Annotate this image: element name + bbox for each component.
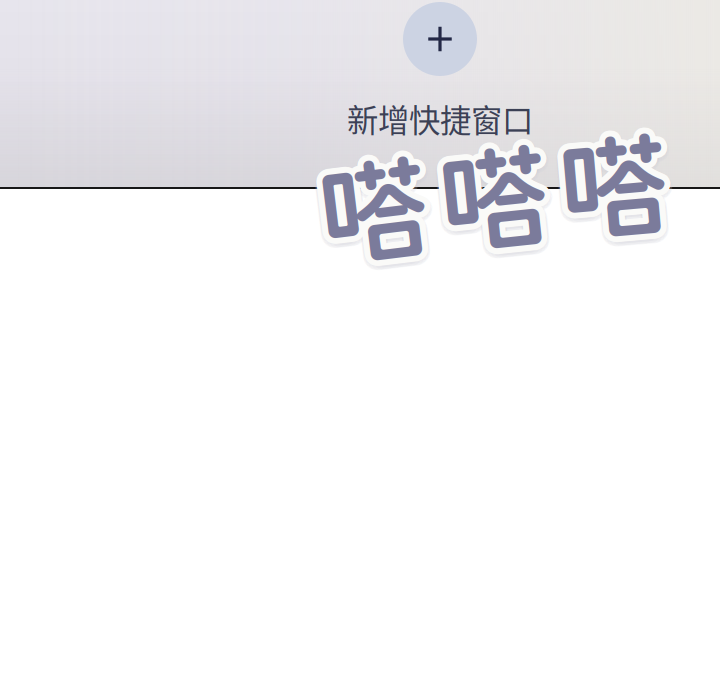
staticText: 嗒 xyxy=(316,142,425,271)
staticText: 嗒 xyxy=(444,130,553,259)
staticText: 嗒 xyxy=(322,156,431,285)
staticText: 嗒 xyxy=(322,141,431,270)
staticText: 嗒 xyxy=(317,152,426,281)
staticText: 嗒 xyxy=(439,129,548,258)
staticText: 嗒 xyxy=(445,142,554,271)
staticText: 嗒 xyxy=(552,128,661,257)
staticText: 嗒 xyxy=(445,132,554,261)
staticText: 嗒 xyxy=(319,157,428,286)
staticText: 嗒 xyxy=(434,142,543,271)
staticText: 嗒 xyxy=(564,127,673,256)
staticText: 嗒 xyxy=(562,118,671,247)
staticText: 嗒 xyxy=(314,154,423,283)
staticText: 嗒 xyxy=(324,142,433,271)
staticText: 嗒 xyxy=(314,144,423,273)
staticText: 嗒 xyxy=(562,128,671,257)
staticText: 嗒 xyxy=(565,130,674,259)
staticText: 嗒 xyxy=(325,149,434,278)
staticText: 嗒 xyxy=(552,122,661,251)
staticText: 嗒 xyxy=(435,130,544,259)
staticText: 嗒 xyxy=(554,130,663,259)
staticText: 嗒 xyxy=(312,149,421,278)
staticText: 嗒 xyxy=(447,137,556,266)
staticText: 新增快捷窗口 xyxy=(347,96,533,141)
staticText: 嗒 xyxy=(559,133,668,262)
staticText: 嗒 xyxy=(564,118,673,247)
staticText: 嗒 xyxy=(432,137,541,266)
staticText: 嗒 xyxy=(434,132,543,261)
staticText: 嗒 xyxy=(559,117,668,246)
staticText: 嗒 xyxy=(439,140,548,269)
staticText: 嗒 xyxy=(442,130,551,259)
staticText: 嗒 xyxy=(313,146,422,275)
staticText: 嗒 xyxy=(554,125,663,254)
staticText: 嗒 xyxy=(437,129,546,258)
staticText: 嗒 xyxy=(325,154,434,283)
staticText: 嗒 xyxy=(436,144,545,273)
staticText: 嗒 xyxy=(327,146,436,275)
staticText: 嗒 xyxy=(325,143,434,272)
staticText: 嗒 xyxy=(567,125,676,254)
staticText: 嗒 xyxy=(434,131,543,260)
staticText: 嗒 xyxy=(325,146,434,275)
staticText: 嗒 xyxy=(327,149,436,278)
staticText: 嗒 xyxy=(554,119,663,248)
staticText: 嗒 xyxy=(565,122,674,251)
staticText: 嗒 xyxy=(559,122,668,251)
staticText: 嗒 xyxy=(447,140,556,269)
staticText: 嗒 xyxy=(435,139,544,268)
staticText: 嗒 xyxy=(432,134,541,263)
staticText: 嗒 xyxy=(325,144,434,273)
staticText: 嗒 xyxy=(562,117,671,246)
staticText: 嗒 xyxy=(315,151,424,280)
staticText: 嗒 xyxy=(447,134,556,263)
staticText: 嗒 xyxy=(319,146,428,275)
staticText: 嗒 xyxy=(314,149,423,278)
staticText: 嗒 xyxy=(553,122,662,251)
staticText: 嗒 xyxy=(437,140,546,269)
staticText: 嗒 xyxy=(556,132,665,261)
staticText: 嗒 xyxy=(322,142,431,271)
staticText: 嗒 xyxy=(439,145,548,274)
staticText: 嗒 xyxy=(433,134,542,263)
staticText: 嗒 xyxy=(327,152,436,281)
staticText: 嗒 xyxy=(316,156,425,285)
staticText: 嗒 xyxy=(567,128,676,257)
staticText: 嗒 xyxy=(434,137,543,266)
staticText: 嗒 xyxy=(445,134,554,263)
staticText: 嗒 xyxy=(442,144,551,273)
staticText: 嗒 xyxy=(556,118,665,247)
staticText: 嗒 xyxy=(314,143,423,272)
staticText: 嗒 xyxy=(552,125,661,254)
staticText: 嗒 xyxy=(555,127,664,256)
staticText: 嗒 xyxy=(562,132,671,261)
button[interactable]: Add shortcut window xyxy=(403,2,477,76)
staticText: 嗒 xyxy=(317,141,426,270)
staticText: 嗒 xyxy=(439,134,548,263)
staticText: 嗒 xyxy=(432,140,541,269)
staticText: 嗒 xyxy=(439,128,548,257)
staticText: 嗒 xyxy=(559,116,668,245)
staticText: 嗒 xyxy=(555,118,664,247)
staticText: 嗒 xyxy=(324,151,433,280)
staticText: 嗒 xyxy=(445,137,554,266)
staticText: 嗒 xyxy=(444,139,553,268)
staticText: 嗒 xyxy=(319,140,428,269)
staticText: 嗒 xyxy=(319,152,428,281)
staticText: 嗒 xyxy=(442,140,551,269)
staticText: 嗒 xyxy=(436,130,545,259)
staticText: 嗒 xyxy=(442,129,551,258)
staticText: 嗒 xyxy=(557,117,666,246)
staticText: 嗒 xyxy=(565,125,674,254)
staticText: 嗒 xyxy=(312,146,421,275)
staticText: 嗒 xyxy=(559,128,668,257)
staticText: 嗒 xyxy=(565,120,674,249)
staticText: 嗒 xyxy=(319,141,428,270)
staticText: 嗒 xyxy=(557,128,666,257)
staticText: 嗒 xyxy=(554,120,663,249)
staticText: 嗒 xyxy=(315,142,424,271)
staticText: 嗒 xyxy=(565,119,674,248)
staticText: 嗒 xyxy=(445,131,554,260)
staticText: 嗒 xyxy=(567,122,676,251)
staticText: 嗒 xyxy=(322,152,431,281)
